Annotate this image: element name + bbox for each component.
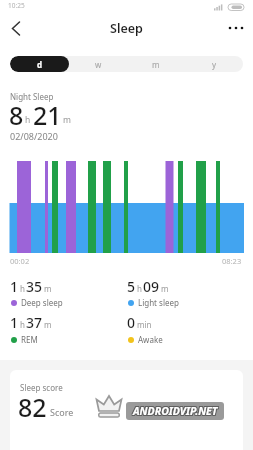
- staticText: 82: [18, 390, 47, 424]
- staticText: min: [137, 319, 152, 330]
- staticText: 00:02: [10, 256, 30, 266]
- staticText: 02/08/2020: [10, 130, 58, 142]
- staticText: ANDROIDVIP.NET: [134, 405, 219, 419]
- button[interactable]: w: [69, 56, 127, 72]
- button[interactable]: [225, 18, 247, 38]
- staticText: Light sleep: [138, 297, 179, 308]
- staticText: 37: [26, 313, 43, 332]
- staticText: 08:23: [222, 256, 242, 266]
- staticText: Deep sleep: [21, 297, 63, 308]
- staticText: m: [63, 114, 71, 126]
- staticText: Sleep: [110, 20, 143, 37]
- staticText: m: [44, 283, 52, 294]
- staticText: 21: [33, 98, 62, 132]
- staticText: 5: [127, 277, 136, 296]
- button[interactable]: m: [127, 56, 185, 72]
- staticText: y: [212, 59, 217, 70]
- staticText: 1: [10, 277, 19, 296]
- staticText: m: [161, 283, 169, 294]
- staticText: Sleep score: [20, 382, 63, 393]
- staticText: ANDROIDVIP.NET: [134, 403, 219, 417]
- staticText: h: [25, 114, 31, 126]
- button[interactable]: Sleep score: [10, 370, 243, 450]
- staticText: ANDROIDVIP.NET: [132, 404, 217, 418]
- staticText: Awake: [138, 334, 163, 345]
- staticText: w: [95, 59, 102, 70]
- staticText: ANDROIDVIP.NET: [132, 403, 217, 417]
- staticText: m: [152, 59, 160, 70]
- staticText: 10:25: [8, 1, 25, 10]
- staticText: 09: [143, 277, 160, 296]
- staticText: 0: [127, 313, 136, 332]
- staticText: ANDROIDVIP.NET: [132, 405, 217, 419]
- staticText: Night Sleep: [10, 91, 54, 102]
- staticText: ANDROIDVIP.NET: [133, 405, 218, 419]
- staticText: h: [137, 283, 142, 294]
- button[interactable]: [6, 18, 28, 40]
- staticText: h: [20, 319, 25, 330]
- staticText: ANDROIDVIP.NET: [133, 403, 218, 417]
- button[interactable]: y: [185, 56, 243, 72]
- staticText: Score: [50, 406, 74, 418]
- staticText: h: [20, 283, 25, 294]
- staticText: m: [44, 319, 52, 330]
- button[interactable]: d: [10, 56, 69, 72]
- staticText: 35: [26, 277, 43, 296]
- staticText: ANDROIDVIP.NET: [134, 404, 219, 418]
- staticText: ANDROIDVIP.NET: [133, 404, 218, 418]
- staticText: 8: [9, 98, 24, 132]
- staticText: 1: [10, 313, 19, 332]
- staticText: REM: [21, 334, 38, 345]
- staticText: d: [37, 59, 43, 70]
